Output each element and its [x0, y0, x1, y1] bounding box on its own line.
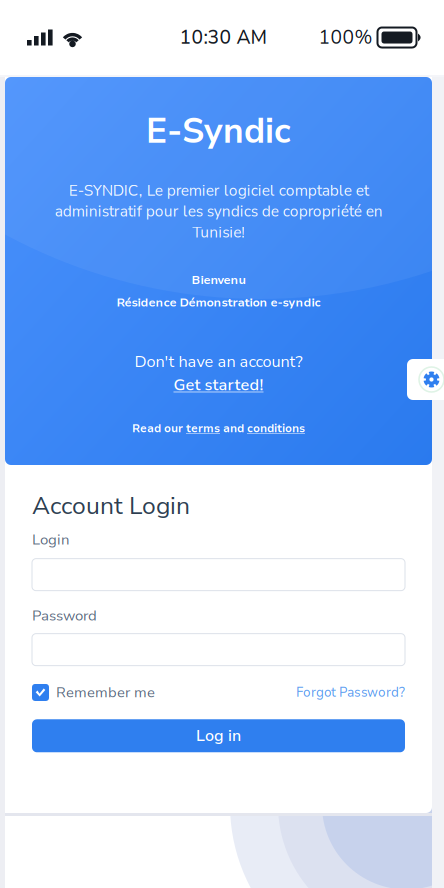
button[interactable]: Get started!: [173, 374, 263, 396]
staticText: Login: [32, 530, 70, 550]
button[interactable]: Forgot Password?: [296, 684, 405, 701]
button[interactable]: Remember me: [32, 683, 155, 702]
staticText: 10:30 AM: [179, 24, 266, 51]
staticText: Password: [32, 606, 97, 626]
staticText: E-Syndic: [146, 107, 291, 155]
staticText: Get started!: [173, 374, 263, 396]
button[interactable]: Settings: [407, 359, 444, 400]
staticText: Remember me: [56, 683, 155, 702]
button[interactable]: Log in: [32, 719, 405, 752]
staticText: Forgot Password?: [296, 684, 405, 701]
staticText: Don't have an account?: [134, 351, 302, 373]
staticText: Résidence Démonstration e-syndic: [116, 294, 320, 311]
staticText: 100%: [318, 24, 372, 51]
staticText: E-SYNDIC, Le premier logiciel comptable …: [54, 180, 382, 243]
staticText: Read our terms and conditions: [132, 421, 305, 436]
staticText: Bienvenu: [191, 272, 245, 288]
staticText: Log in: [196, 725, 241, 747]
staticText: Account Login: [32, 489, 190, 523]
